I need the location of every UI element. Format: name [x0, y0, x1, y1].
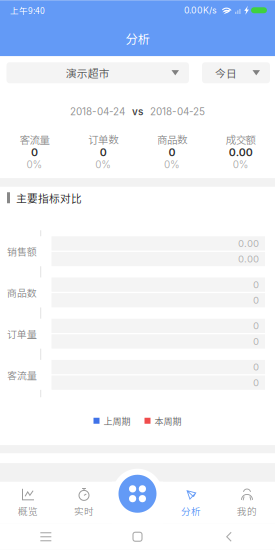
staticText: 0%: [26, 159, 42, 171]
staticText: 订单数: [88, 132, 118, 147]
staticText: 0: [253, 320, 259, 332]
staticText: 我的: [237, 504, 257, 518]
staticText: 客流量: [19, 132, 49, 147]
staticText: 销售额: [7, 244, 37, 258]
staticText: 0.00: [238, 238, 259, 249]
staticText: 0.00K/s: [184, 5, 217, 15]
button[interactable]: 概览: [0, 484, 56, 521]
staticText: 上午9:40: [10, 4, 45, 16]
button[interactable]: Home: [92, 524, 183, 550]
staticText: 0%: [164, 159, 180, 171]
staticText: 商品数: [157, 132, 187, 147]
staticText: 0.00: [229, 146, 253, 159]
staticText: 订单量: [7, 326, 37, 341]
staticText: 成交额: [226, 132, 256, 147]
button[interactable]: Back: [183, 524, 275, 550]
staticText: 客流量: [7, 368, 37, 382]
staticText: 上周期: [103, 414, 130, 427]
staticText: vs: [132, 106, 143, 118]
button[interactable]: 今日: [202, 62, 270, 83]
button[interactable]: 我的: [219, 484, 275, 521]
staticText: 2018-04-24: [70, 106, 125, 118]
staticText: 0.00: [238, 253, 259, 265]
staticText: 0: [31, 146, 38, 159]
staticText: 主要指标对比: [16, 190, 82, 205]
button[interactable]: 快捷: [118, 475, 156, 513]
staticText: 0: [100, 146, 107, 159]
button[interactable]: 演示超市: [6, 62, 189, 83]
staticText: 实时: [74, 504, 94, 518]
staticText: 0%: [95, 159, 111, 171]
staticText: 0: [253, 361, 259, 373]
staticText: 本周期: [154, 414, 181, 427]
staticText: 0: [253, 279, 259, 290]
staticText: 0: [253, 336, 259, 347]
staticText: 分析: [181, 504, 201, 518]
staticText: 商品数: [7, 285, 37, 300]
button[interactable]: Recents: [0, 524, 92, 550]
staticText: 0%: [233, 159, 249, 171]
staticText: 0: [253, 377, 259, 388]
staticText: 0: [168, 146, 175, 159]
staticText: 演示超市: [66, 65, 110, 80]
staticText: 概览: [18, 504, 38, 518]
staticText: 2018-04-25: [150, 106, 205, 118]
staticText: 0: [253, 294, 259, 306]
staticText: 今日: [215, 65, 237, 80]
button[interactable]: 分析: [163, 484, 219, 521]
button[interactable]: 实时: [56, 484, 112, 521]
staticText: 分析: [125, 29, 149, 47]
